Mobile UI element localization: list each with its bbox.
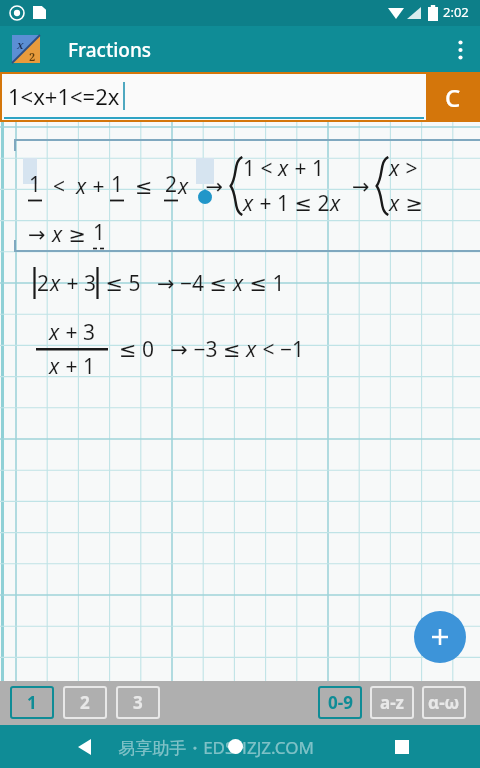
staticText: + 1 [60, 352, 95, 381]
staticText: 2 [29, 49, 36, 64]
staticText: ≤ 5 → −4 ≤ [100, 269, 233, 298]
staticText: → [28, 220, 52, 249]
button[interactable] [16, 313, 376, 385]
staticText: < [42, 172, 76, 201]
button[interactable]: 0-9 [318, 686, 362, 719]
staticText: x [330, 189, 341, 218]
staticText: ≥ [400, 189, 424, 218]
button[interactable]: a-z [370, 686, 414, 719]
staticText: 1 [29, 170, 42, 199]
staticText: + 3 [60, 318, 95, 347]
button[interactable]: 2 [63, 686, 107, 719]
staticText: x [52, 220, 63, 249]
staticText: x [389, 154, 400, 183]
staticText: ≤ [124, 172, 164, 201]
staticText: α-ω [428, 691, 460, 714]
staticText: 2:02 [443, 3, 469, 21]
staticText: 0-9 [328, 691, 353, 714]
staticText: + [87, 172, 110, 201]
button[interactable]: More options [442, 26, 480, 72]
staticText: x [278, 154, 289, 183]
button[interactable]: Back [62, 725, 106, 768]
staticText: x [246, 335, 257, 364]
staticText: x [389, 189, 400, 218]
staticText: x [50, 269, 61, 298]
staticText: 1 < [243, 154, 278, 183]
staticText: → [341, 172, 375, 201]
staticText: x [76, 172, 87, 201]
staticText: x [17, 37, 24, 52]
button[interactable] [16, 259, 376, 303]
staticText: 易享助手・EDSHZJZ.COM [118, 736, 314, 759]
staticText: x [49, 318, 60, 347]
staticText: → [189, 172, 229, 201]
staticText: C [445, 81, 461, 114]
staticText: x [233, 269, 244, 298]
staticText: ≥ [63, 220, 92, 249]
staticText: 1<x+1<=2x [8, 81, 120, 111]
button[interactable]: α-ω [422, 686, 466, 719]
staticText: ≤ 1 [244, 269, 285, 298]
button[interactable]: Recents [380, 725, 424, 768]
staticText: 2 [37, 269, 50, 298]
button[interactable] [14, 139, 480, 252]
staticText: > [400, 154, 418, 183]
button[interactable]: Home [228, 739, 243, 754]
button[interactable]: 3 [116, 686, 160, 719]
staticText: < −1 [257, 335, 304, 364]
staticText: x [243, 189, 254, 218]
staticText: Fractions [68, 37, 152, 63]
staticText: 2 [80, 691, 90, 714]
button[interactable]: Add [414, 611, 466, 663]
staticText: + 3 [61, 269, 96, 298]
staticText: x [178, 172, 189, 201]
staticText: 2 [165, 170, 178, 199]
button[interactable]: C [426, 72, 480, 122]
button[interactable]: 1<x+1<=2x [2, 74, 426, 120]
staticText: 1 [111, 170, 124, 199]
button[interactable]: 1 [10, 686, 54, 719]
staticText: ≤ 0 → −3 ≤ [108, 335, 246, 364]
staticText: 1 [27, 691, 37, 714]
staticText: 3 [133, 691, 143, 714]
staticText: x [49, 352, 60, 381]
staticText: a-z [380, 691, 405, 714]
staticText: 1 [93, 218, 106, 247]
staticText: + 1 ≤ 2 [254, 189, 330, 218]
staticText: + 1 [289, 154, 324, 183]
